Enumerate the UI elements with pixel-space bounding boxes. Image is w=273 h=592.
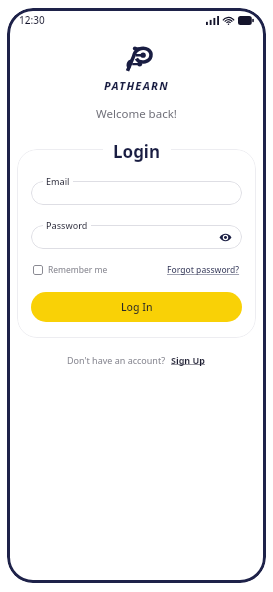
staticText: Remember me xyxy=(48,264,108,276)
staticText: PATHEARN xyxy=(104,78,169,93)
staticText: Don't have an account? xyxy=(67,354,166,366)
button[interactable]: Sign Up xyxy=(171,354,206,366)
button[interactable] xyxy=(31,181,242,205)
button[interactable]: Show password xyxy=(31,225,242,249)
staticText: Password xyxy=(46,219,88,231)
staticText: Log In xyxy=(121,300,153,314)
staticText: Sign Up xyxy=(171,354,206,366)
button[interactable]: Forgot password? xyxy=(167,262,240,278)
button[interactable]: Show password xyxy=(218,230,232,244)
staticText: Login xyxy=(113,140,161,163)
button[interactable]: Remember me xyxy=(33,262,108,278)
button[interactable]: Log In xyxy=(31,292,242,322)
staticText: Forgot password? xyxy=(167,264,240,276)
staticText: Welcome back! xyxy=(96,106,177,122)
staticText: Email xyxy=(46,175,70,187)
staticText: 12:30 xyxy=(19,13,45,27)
